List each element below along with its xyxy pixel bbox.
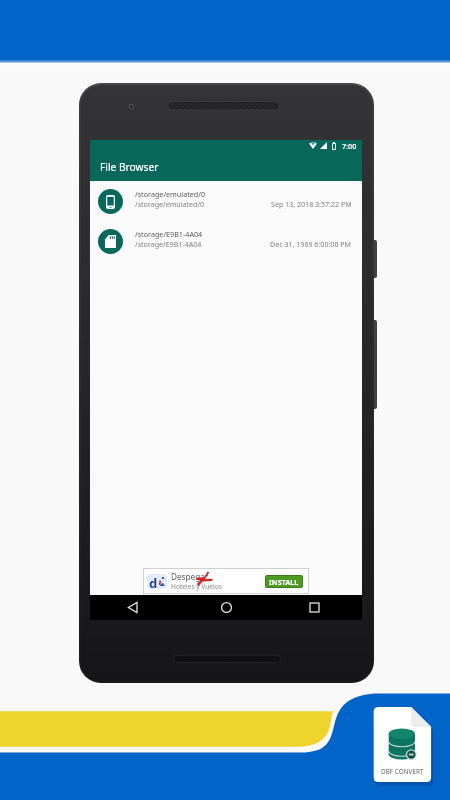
staticText: /storage/E9B1-4A04 <box>135 239 202 249</box>
staticText: INSTALL <box>269 577 299 587</box>
staticText: Despegar <box>171 571 209 582</box>
staticText: Dec 31, 1969 6:00:00 PM <box>270 239 352 249</box>
staticText: 7:00 <box>342 141 357 151</box>
button[interactable]: Recent apps <box>310 603 319 612</box>
button[interactable]: /storage/emulated/0 <box>90 181 362 221</box>
button[interactable]: DBF Convert app icon <box>373 707 431 783</box>
button[interactable]: Home <box>221 602 232 613</box>
button[interactable]: d <box>144 569 308 593</box>
button[interactable]: INSTALL <box>266 576 302 587</box>
button[interactable]: /storage/E9B1-4A04 <box>90 221 362 261</box>
button[interactable]: File Browser <box>90 153 362 181</box>
button[interactable]: Back <box>128 602 138 613</box>
staticText: DBF CONVERT <box>381 767 424 776</box>
staticText: File Browser <box>100 160 159 174</box>
staticText: /storage/emulated/0 <box>135 189 206 199</box>
staticText: d <box>149 574 158 589</box>
staticText: Hoteles y Vuelos <box>171 582 222 591</box>
staticText: /storage/emulated/0 <box>135 199 205 209</box>
staticText: Sep 13, 2018 3:57:22 PM <box>271 199 352 209</box>
staticText: /storage/E9B1-4A04 <box>135 229 203 239</box>
